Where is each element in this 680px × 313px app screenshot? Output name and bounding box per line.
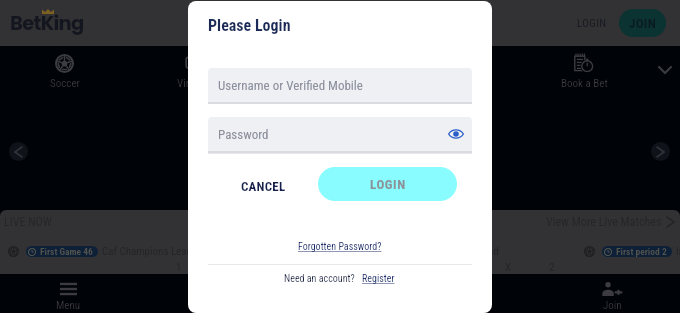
staticText: Please Login	[208, 16, 291, 35]
staticText: Need an account?	[284, 273, 355, 285]
staticText: LOGIN	[577, 17, 607, 30]
staticText: Login	[464, 299, 489, 312]
staticText: Casino	[309, 77, 339, 90]
staticText: Soccer	[50, 77, 80, 90]
staticText: 1	[464, 261, 470, 274]
staticText: CANCEL	[241, 179, 286, 194]
staticText: Password	[218, 127, 269, 142]
button[interactable]: First Game 46	[0, 234, 284, 274]
staticText: First Game 46	[40, 246, 93, 257]
button[interactable]: Password	[208, 117, 472, 151]
staticText: Username or Verified Mobile	[218, 78, 363, 93]
staticText: 2	[549, 261, 555, 274]
staticText: Virtuals	[177, 77, 211, 90]
button[interactable]: Book a Bet	[519, 46, 649, 93]
staticText: Caf Champions League C	[102, 245, 212, 258]
staticText: Second Game 12	[328, 246, 392, 257]
button[interactable]: Forgotten Password?	[294, 239, 386, 255]
staticText: Join	[603, 299, 622, 312]
staticText: LIVE NOW	[4, 215, 52, 229]
staticText: Sports	[190, 299, 219, 312]
staticText: View More Live Matches	[546, 215, 662, 229]
button[interactable]: Soccer	[0, 46, 129, 93]
staticText: X	[505, 261, 512, 274]
button[interactable]: Join	[544, 274, 680, 313]
staticText: First period 2	[616, 246, 667, 257]
button[interactable]: Register	[360, 271, 397, 287]
button[interactable]: LOGIN	[571, 12, 613, 35]
button[interactable]: First period 2	[576, 234, 680, 274]
button[interactable]: Username or Verified Mobile	[208, 68, 472, 102]
button[interactable]: Menu	[0, 274, 136, 313]
button[interactable]: CANCEL	[230, 172, 297, 201]
button[interactable]: Login	[408, 274, 544, 313]
staticText: Forgotten Password?	[298, 241, 382, 253]
button[interactable]: Jackpot	[389, 46, 519, 93]
button[interactable]: Previous	[9, 142, 28, 161]
button[interactable]: Bet Slip	[272, 274, 408, 313]
button[interactable]: Next	[651, 142, 670, 161]
staticText: 2	[261, 261, 267, 274]
button[interactable]: Virtuals	[129, 46, 259, 93]
button[interactable]: Show password	[448, 126, 464, 142]
staticText: X	[217, 261, 224, 274]
button[interactable]: View More Live Matches	[544, 213, 676, 231]
button[interactable]: Casino	[259, 46, 389, 93]
staticText: Premier League Round	[401, 245, 499, 258]
button[interactable]: Sports	[136, 274, 272, 313]
staticText: Register	[362, 273, 395, 285]
staticText: Menu	[56, 299, 81, 312]
button[interactable]: Expand menu	[649, 46, 680, 93]
staticText: International Friendly	[676, 245, 680, 258]
button[interactable]: BetKing	[10, 10, 84, 37]
staticText: LOGIN	[370, 177, 406, 192]
staticText: BetKing	[10, 10, 84, 37]
button[interactable]: Second Game 12	[288, 234, 572, 274]
staticText: Book a Bet	[561, 77, 608, 90]
staticText: JOIN	[629, 16, 656, 31]
button[interactable]: LOGIN	[318, 167, 457, 201]
button[interactable]: JOIN	[619, 9, 666, 37]
